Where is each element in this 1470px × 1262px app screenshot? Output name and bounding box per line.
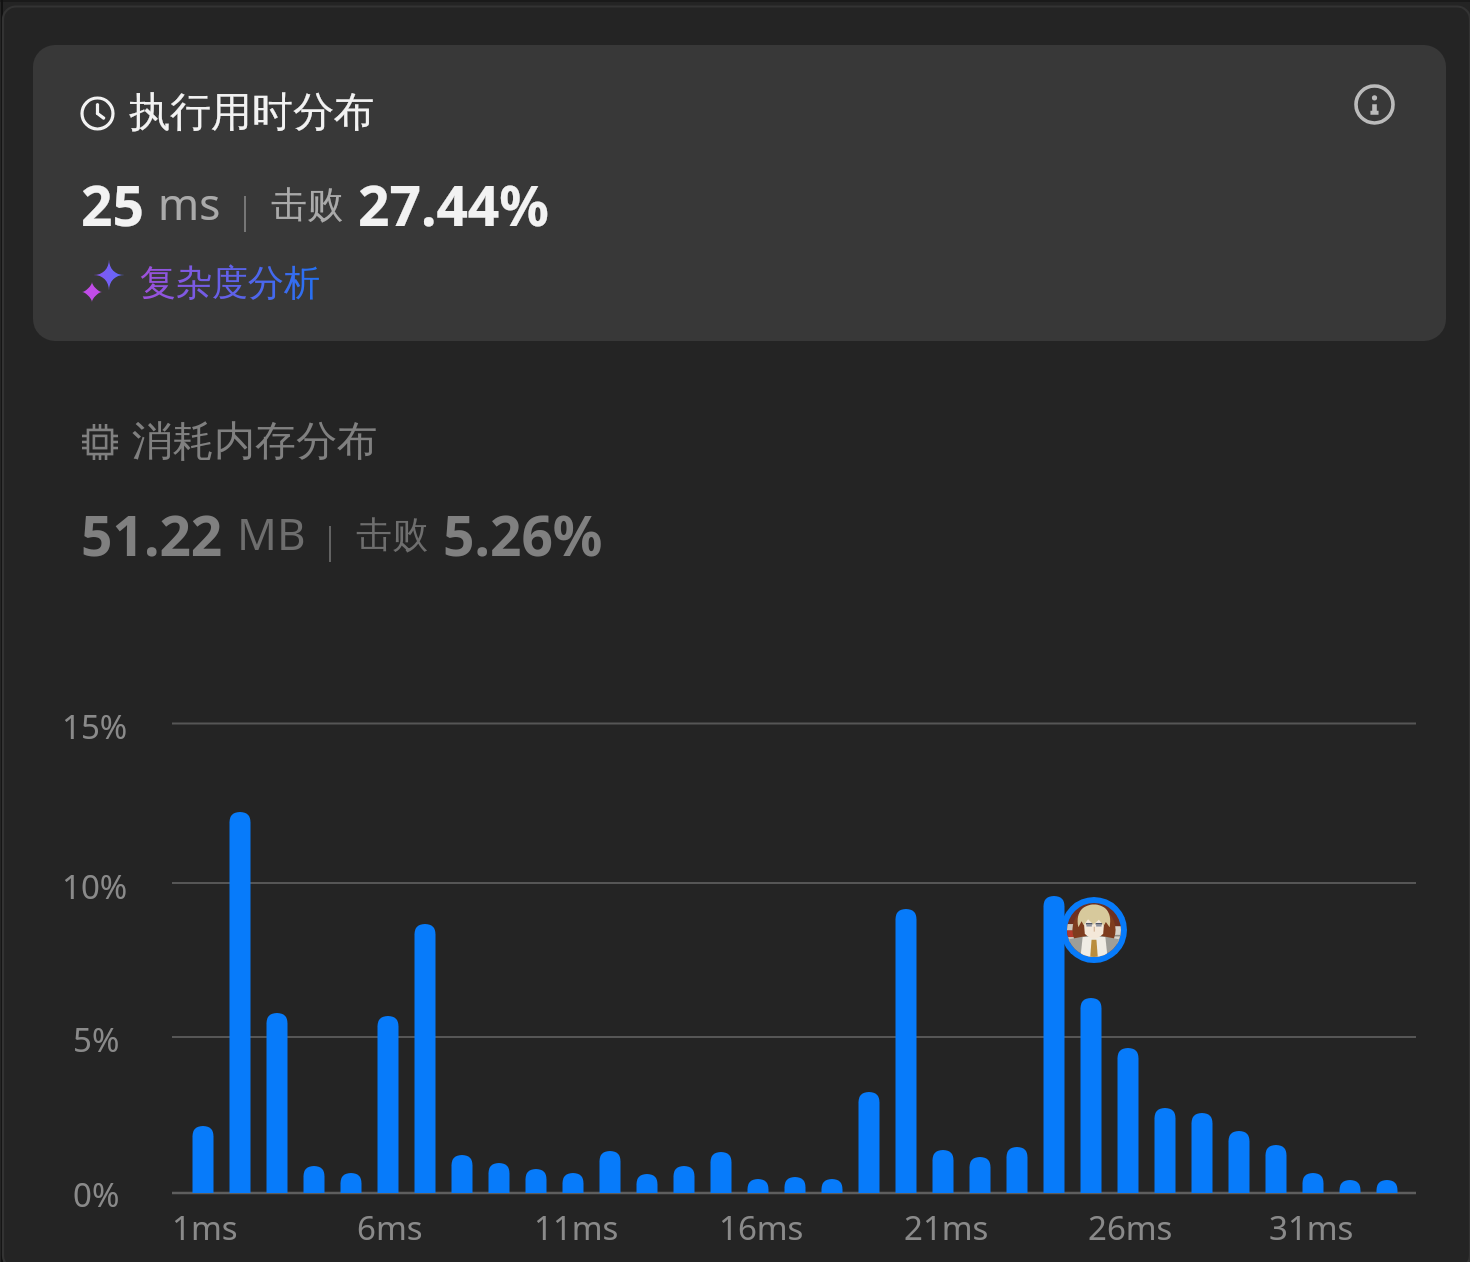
staticText: MB: [237, 503, 306, 563]
staticText: 5.26%: [443, 497, 603, 572]
staticText: 21ms: [904, 1205, 989, 1250]
staticText: 6ms: [357, 1205, 423, 1250]
staticText: 复杂度分析: [140, 260, 320, 305]
staticText: 15%: [62, 704, 128, 749]
staticText: 0%: [73, 1172, 120, 1217]
staticText: 25: [81, 167, 144, 242]
button[interactable]: Info: [1354, 84, 1395, 125]
staticText: 51.22: [81, 497, 223, 572]
staticText: 1ms: [172, 1205, 238, 1250]
staticText: 26ms: [1088, 1205, 1173, 1250]
button[interactable]: 复杂度分析: [80, 259, 320, 305]
staticText: 11ms: [534, 1205, 619, 1250]
staticText: ms: [158, 173, 221, 233]
button[interactable]: [33, 400, 1446, 580]
staticText: 31ms: [1269, 1205, 1354, 1250]
staticText: 执行用时分布: [129, 87, 375, 139]
staticText: 击败: [271, 182, 343, 227]
button[interactable]: 执行用时分布: [33, 45, 1446, 341]
staticText: 16ms: [719, 1205, 804, 1250]
staticText: 27.44%: [358, 167, 549, 242]
staticText: 消耗内存分布: [132, 416, 378, 468]
staticText: 击败: [356, 512, 428, 557]
staticText: 10%: [62, 864, 128, 909]
staticText: 5%: [73, 1017, 120, 1062]
